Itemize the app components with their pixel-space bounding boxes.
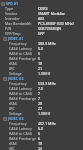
staticText: Frequency <box>9 41 27 46</box>
staticText: tRC <box>9 146 15 150</box>
staticText: tRAS <box>9 101 17 106</box>
staticText: SMART Modular <box>38 11 65 16</box>
staticText: RAS# Precharge <box>9 96 37 101</box>
staticText: CAS# Latency <box>9 46 32 51</box>
staticText: 380.5 MHz <box>38 41 56 46</box>
staticText: tRAS <box>9 141 17 146</box>
staticText: SG572568GJH <box>38 26 62 31</box>
button[interactable]: tRC <box>0 146 83 150</box>
button[interactable]: Voltage <box>0 111 83 116</box>
button[interactable]: Vendor <box>0 11 83 16</box>
staticText: 6 <box>38 131 41 136</box>
staticText: CAS# Latency <box>9 86 32 91</box>
staticText: JEDEC #1 <box>8 36 24 41</box>
staticText: 18 <box>38 141 43 146</box>
button[interactable]: RAS# to CAS# <box>0 51 83 56</box>
staticText: JEDEC #2 <box>8 76 24 81</box>
staticText: tRC <box>9 66 15 71</box>
button[interactable]: Expand JEDEC #2 <box>0 76 83 81</box>
button[interactable]: tRAS <box>0 101 83 106</box>
button[interactable]: RAS# Precharge <box>0 56 83 61</box>
button[interactable]: Expand JEDEC #3 <box>0 116 83 121</box>
staticText: 1.500 V <box>38 71 51 76</box>
staticText: 7.0 <box>38 86 44 91</box>
staticText: RAS# to CAS# <box>9 91 33 96</box>
button[interactable]: Frequency <box>0 41 83 46</box>
staticText: Voltage <box>9 71 22 76</box>
button[interactable]: RAS# to CAS# <box>0 131 83 136</box>
staticText: 1.500 V <box>38 111 51 116</box>
staticText: JEDEC #3 <box>8 116 24 121</box>
button[interactable]: EPP/Xmp <box>0 31 83 36</box>
staticText: PC3-8500F (533 MHz) <box>38 21 74 26</box>
staticText: DDR3 <box>38 6 48 11</box>
button[interactable]: RAS# Precharge <box>0 136 83 141</box>
staticText: P/N <box>5 26 12 31</box>
staticText: RAS# to CAS# <box>9 131 33 136</box>
staticText: Intender <box>5 16 20 21</box>
staticText: Vendor <box>5 11 18 16</box>
button[interactable]: RAS# to CAS# <box>0 91 83 96</box>
button[interactable]: Frequency <box>0 81 83 86</box>
staticText: Type <box>5 6 13 11</box>
staticText: 18 <box>38 61 43 66</box>
staticText: tRC <box>9 106 15 111</box>
staticText: Max Bandwidth <box>5 21 32 26</box>
staticText: 5.0 <box>38 46 44 51</box>
button[interactable]: P/N <box>0 26 83 31</box>
staticText: 5 <box>38 56 41 61</box>
button[interactable]: CAS# Latency <box>0 126 83 131</box>
staticText: Voltage <box>9 111 22 116</box>
button[interactable]: Type <box>0 6 83 11</box>
button[interactable]: tRAS <box>0 141 83 146</box>
staticText: EPP/Xmp <box>5 31 21 36</box>
staticText: 24 <box>38 146 43 150</box>
staticText: 6 <box>38 136 41 141</box>
button[interactable]: Expand SPD 1 <box>0 1 83 6</box>
button[interactable]: Voltage <box>0 71 83 76</box>
staticText: tRAS <box>9 61 17 66</box>
button[interactable]: Intender <box>0 16 83 21</box>
staticText: EPP <box>38 31 45 36</box>
staticText: 6.0 <box>38 126 44 131</box>
staticText: RAS# Precharge <box>9 56 37 61</box>
staticText: 457.1 MHz <box>38 121 56 126</box>
staticText: 5 <box>38 51 41 56</box>
button[interactable]: RAS# Precharge <box>0 96 83 101</box>
staticText: CAS# Latency <box>9 126 32 131</box>
button[interactable]: Expand JEDEC 1 <box>0 36 83 41</box>
staticText: 20 <box>38 101 43 106</box>
button[interactable]: tRAS <box>0 61 83 66</box>
staticText: 27 <box>38 106 43 111</box>
staticText: 7 <box>38 91 41 96</box>
staticText: 533.3 MHz <box>38 81 56 86</box>
staticText: 7 <box>38 96 41 101</box>
staticText: SPD #1 <box>6 1 19 6</box>
staticText: Frequency <box>9 121 27 126</box>
button[interactable]: Max Bandwidth <box>0 21 83 26</box>
button[interactable]: CAS# Latency <box>0 86 83 91</box>
staticText: RAS# Precharge <box>9 136 37 141</box>
button[interactable]: Frequency <box>0 121 83 126</box>
button[interactable]: tRC <box>0 106 83 111</box>
staticText: A02 <box>38 16 45 21</box>
button[interactable]: CAS# Latency <box>0 46 83 51</box>
button[interactable]: tRC <box>0 66 83 71</box>
staticText: 21 <box>38 66 43 71</box>
staticText: Frequency <box>9 81 27 86</box>
staticText: RAS# to CAS# <box>9 51 33 56</box>
